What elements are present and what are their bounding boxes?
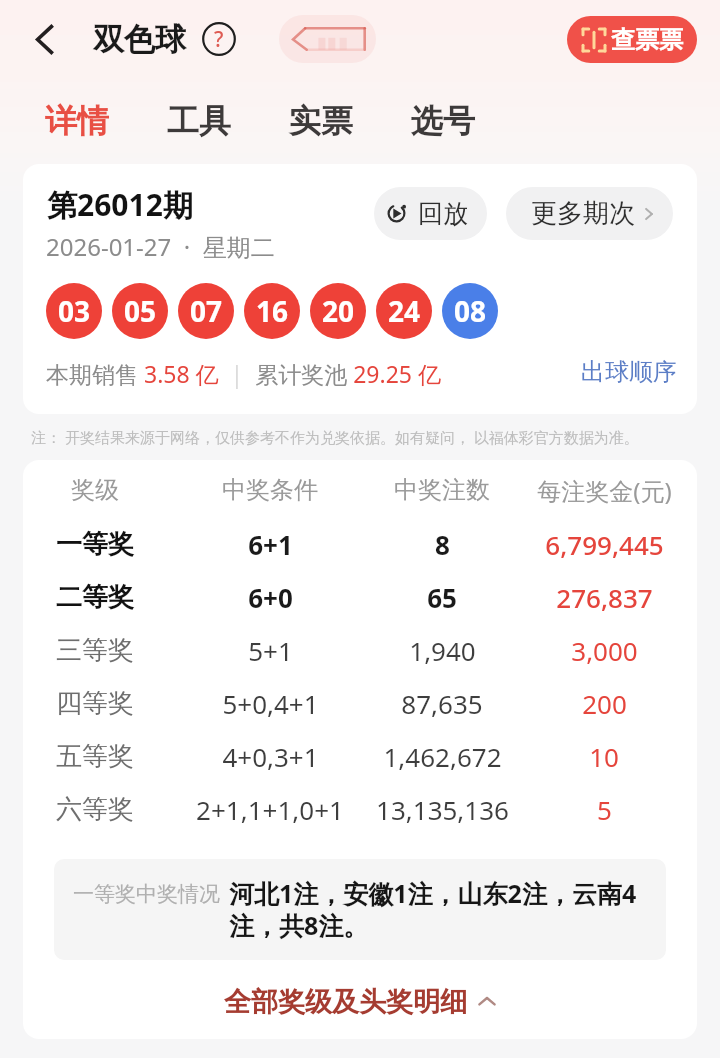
staticText: 第26012期 (47, 184, 193, 225)
staticText: 出球顺序 (581, 357, 677, 387)
button[interactable]: 全部奖级及头奖明细 (23, 985, 697, 1019)
staticText: 本期销售 3.58 亿 | 累计奖池 29.25 亿 (46, 358, 441, 389)
button[interactable]: 更多期次 (506, 187, 673, 240)
staticText: 5 (597, 792, 612, 827)
staticText: 200 (582, 686, 627, 721)
staticText: 05 (124, 292, 157, 330)
button[interactable]: 出球顺序 (581, 357, 677, 387)
button[interactable]: Help (199, 19, 239, 59)
staticText: 08 (454, 292, 487, 330)
button[interactable]: 查票票 (567, 16, 697, 63)
staticText: 2+1,1+1,0+1 (196, 792, 344, 827)
staticText: 8 (435, 527, 450, 562)
staticText: 工具 (167, 101, 231, 141)
button[interactable]: Notice (279, 15, 376, 63)
staticText: 三等奖 (56, 634, 134, 667)
staticText: 双色球 (93, 20, 186, 59)
staticText: 10 (589, 739, 619, 774)
button[interactable]: 回放 (374, 187, 487, 240)
button[interactable]: 选号 (394, 88, 492, 154)
staticText: 中奖条件 (222, 475, 318, 505)
staticText: 一等奖中奖情况 (73, 881, 220, 907)
button[interactable]: 实票 (272, 88, 370, 154)
button[interactable]: 工具 (150, 88, 248, 154)
staticText: 二等奖 (56, 581, 134, 614)
staticText: 中奖注数 (394, 475, 490, 505)
staticText: 65 (427, 580, 457, 615)
staticText: ? (214, 25, 224, 54)
staticText: 每注奖金(元) (537, 474, 672, 507)
staticText: 4+0,3+1 (222, 739, 319, 774)
staticText: 全部奖级及头奖明细 (224, 985, 467, 1019)
staticText: 5+1 (248, 633, 293, 668)
staticText: 河北1注，安徽1注，山东2注，云南4注，共8注。 (229, 876, 646, 943)
staticText: 13,135,136 (376, 792, 509, 827)
staticText: 实票 (289, 101, 353, 141)
staticText: 回放 (418, 198, 468, 229)
button[interactable]: 详情 (28, 88, 126, 154)
staticText: 16 (256, 292, 289, 330)
staticText: 六等奖 (56, 793, 134, 826)
staticText: 3,000 (571, 633, 638, 668)
staticText: 87,635 (401, 686, 483, 721)
staticText: 03 (58, 292, 91, 330)
button[interactable]: Back (16, 11, 72, 67)
staticText: 6+1 (248, 527, 293, 562)
staticText: 奖级 (71, 475, 119, 505)
staticText: 20 (322, 292, 355, 330)
staticText: 选号 (411, 101, 475, 141)
staticText: 276,837 (556, 580, 653, 615)
staticText: 详情 (45, 101, 109, 141)
staticText: 1,940 (409, 633, 476, 668)
staticText: 四等奖 (56, 687, 134, 720)
staticText: 更多期次 (531, 197, 635, 230)
staticText: 5+0,4+1 (222, 686, 319, 721)
staticText: 五等奖 (56, 740, 134, 773)
staticText: 一等奖 (56, 528, 134, 561)
staticText: 查票票 (611, 25, 683, 55)
staticText: 2026-01-27 · 星期二 (46, 230, 275, 263)
staticText: 注： 开奖结果来源于网络，仅供参考不作为兑奖依据。如有疑问， 以福体彩官方数据为… (31, 427, 639, 447)
staticText: 6,799,445 (545, 527, 664, 562)
staticText: 07 (190, 292, 223, 330)
staticText: 24 (388, 292, 421, 330)
staticText: 6+0 (248, 580, 293, 615)
staticText: 1,462,672 (383, 739, 502, 774)
